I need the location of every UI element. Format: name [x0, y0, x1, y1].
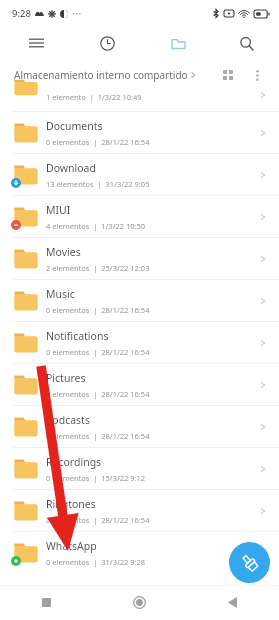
staticText: Movies [46, 245, 81, 259]
staticText: Notifications [46, 329, 109, 343]
staticText: 9:28 [12, 7, 31, 20]
staticText: 0 elementos | 31/3/22 9:28 [46, 557, 146, 567]
button[interactable]: Download [0, 154, 279, 195]
staticText: Download [46, 161, 96, 175]
button[interactable]: Menu [0, 26, 72, 60]
staticText: Documents [46, 119, 103, 133]
button[interactable]: Back [186, 585, 279, 620]
staticText: 0 elementos | 28/1/22 16:54 [46, 347, 150, 357]
button[interactable]: 1 elemento | 1/3/22 10:49 [0, 90, 279, 111]
staticText: Pictures [46, 371, 86, 385]
button[interactable]: Files [142, 26, 214, 60]
staticText: 0 elementos | 28/1/22 16:54 [46, 305, 150, 315]
button[interactable]: Almacenamiento interno compartido [14, 68, 196, 82]
button[interactable]: Clean up [229, 542, 270, 583]
button[interactable]: Recents [0, 585, 93, 620]
staticText: 13 elementos | 31/3/22 9:05 [46, 179, 150, 189]
staticText: Podcasts [46, 413, 90, 427]
staticText: ⋯ [72, 8, 82, 20]
staticText: WhatsApp [46, 539, 97, 553]
staticText: MIUI [46, 203, 71, 217]
button[interactable]: Movies [0, 238, 279, 279]
staticText: Almacenamiento interno compartido [14, 68, 188, 82]
button[interactable]: Search [214, 26, 279, 60]
staticText: Music [46, 287, 75, 301]
button[interactable]: WhatsApp [0, 532, 279, 573]
staticText: 0 elementos | 28/1/22 16:54 [46, 137, 150, 147]
button[interactable]: Music [0, 280, 279, 321]
staticText: 4 elementos | 1/3/22 10:50 [46, 221, 146, 231]
button[interactable]: More options [246, 64, 268, 86]
button[interactable]: Recent [72, 26, 142, 60]
button[interactable]: Grid view [217, 64, 239, 86]
button[interactable]: Ringtones [0, 490, 279, 531]
staticText: 0 elementos | 28/1/22 16:54 [46, 389, 150, 399]
staticText: 0 elementos | 28/1/22 16:54 [46, 515, 150, 525]
button[interactable]: Recordings [0, 448, 279, 489]
staticText: Recordings [46, 455, 102, 469]
button[interactable]: MIUI [0, 196, 279, 237]
staticText: Ringtones [46, 497, 96, 511]
button[interactable]: Documents [0, 112, 279, 153]
staticText: 2 elementos | 25/3/22 12:03 [46, 263, 150, 273]
staticText: 0 elementos | 28/1/22 16:54 [46, 431, 150, 441]
button[interactable]: Podcasts [0, 406, 279, 447]
staticText: 1 elemento | 1/3/22 10:49 [46, 92, 142, 102]
staticText: 0 elementos | 15/3/22 9:12 [46, 473, 146, 483]
button[interactable]: Home [93, 585, 186, 620]
button[interactable]: Notifications [0, 322, 279, 363]
button[interactable]: Pictures [0, 364, 279, 405]
